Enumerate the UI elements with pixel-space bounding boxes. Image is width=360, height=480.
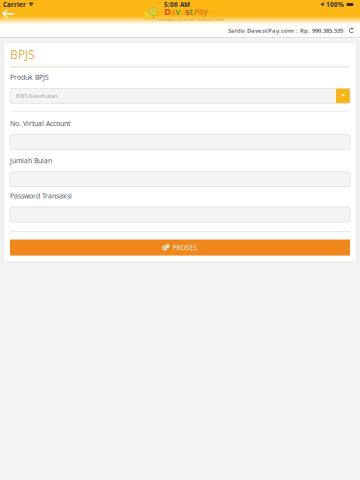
- staticText: s: [185, 5, 189, 17]
- staticText: Carrier: [3, 0, 26, 9]
- staticText: Pembayaran Tagihan dan Pembelian Online: [156, 18, 224, 22]
- staticText: a: [170, 5, 175, 17]
- staticText: Produk BPJS: [10, 72, 49, 82]
- button[interactable]: Refresh balance: [347, 26, 356, 35]
- staticText: BPJS Kesehatan: [16, 92, 58, 100]
- staticText: PROSES: [172, 243, 197, 252]
- staticText: 5:06 AM: [164, 0, 190, 9]
- staticText: D: [164, 5, 170, 17]
- staticText: v: [175, 5, 180, 17]
- staticText: BPJS: [10, 46, 35, 62]
- staticText: Pay: [194, 6, 208, 17]
- staticText: .com: [208, 9, 217, 14]
- staticText: Jumlah Bulan: [10, 156, 52, 165]
- button[interactable]: PROSES: [10, 239, 350, 255]
- button[interactable]: Back: [0, 7, 21, 20]
- staticText: 100%: [326, 0, 344, 9]
- staticText: Password Transaksi: [10, 191, 72, 201]
- staticText: e: [180, 5, 185, 17]
- staticText: Saldo DavestPay.com : Rp. 990.385.535: [228, 26, 343, 35]
- staticText: t: [189, 5, 193, 17]
- staticText: No. Virtual Account: [10, 119, 70, 128]
- button[interactable]: Choose BPJS product: [336, 88, 350, 103]
